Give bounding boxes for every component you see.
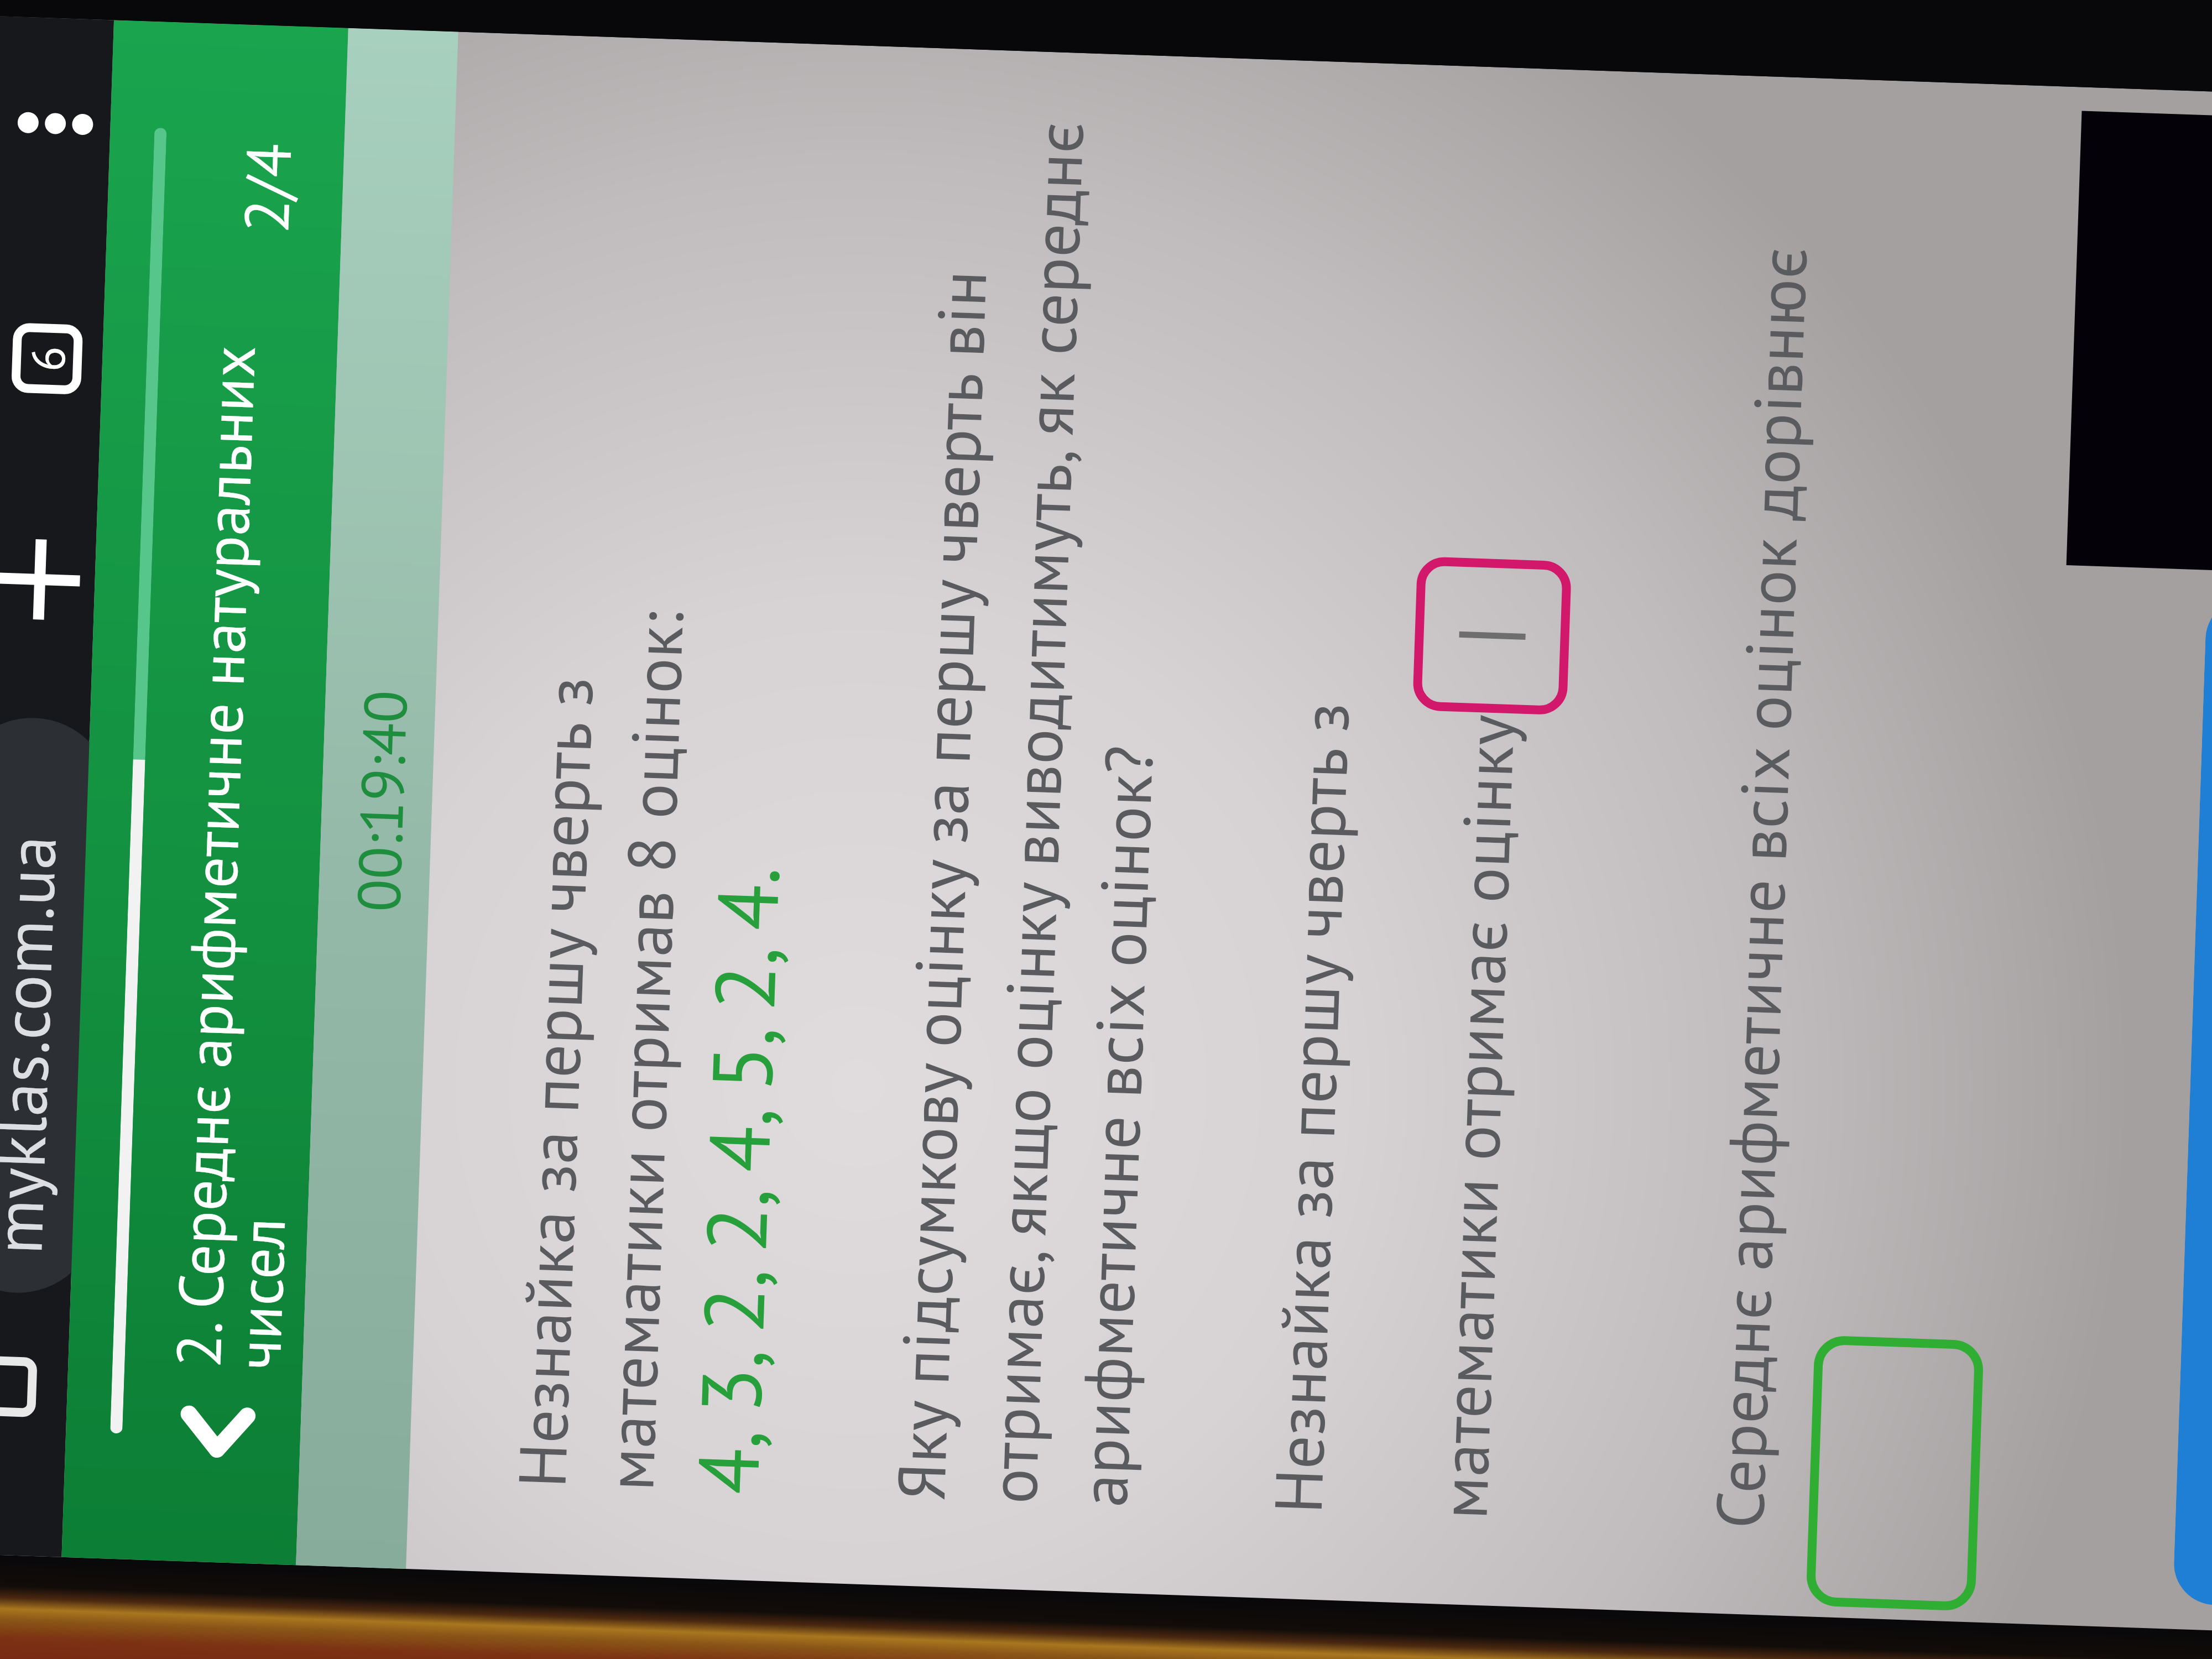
button[interactable]: More options: [0, 67, 112, 181]
button[interactable]: Check answer: [2173, 597, 2212, 1613]
button[interactable]: Home: [0, 1335, 58, 1438]
button[interactable]: Tabs: [0, 302, 104, 416]
staticText: 00:19:40: [339, 689, 424, 913]
staticText: математики отримав 8 оцінок:: [586, 610, 701, 1492]
button[interactable]: Illustration: [2066, 111, 2212, 578]
staticText: Незнайка за першу чверть з: [498, 675, 611, 1489]
staticText: арифметичне всіх оцінок?: [1059, 744, 1171, 1508]
staticText: Незнайка за першу чверть з: [1254, 701, 1367, 1515]
staticText: Середнє арифметичне всіх оцінок дорівнює: [1695, 245, 1825, 1530]
staticText: 2/4: [225, 142, 308, 234]
button[interactable]: Answer input 2: [1806, 1335, 1984, 1611]
staticText: Яку підсумкову оцінку за першу чверть ві…: [877, 269, 1005, 1502]
staticText: математики отримає оцінку: [1419, 713, 1532, 1520]
staticText: 4, 3, 2, 2, 4, 5, 2, 4.: [672, 864, 802, 1496]
staticText: 6: [17, 345, 78, 372]
staticText: отримає, якщо оцінку виводитимуть, як се…: [969, 120, 1101, 1505]
button[interactable]: New tab: [0, 523, 97, 637]
button[interactable]: myklas.com.ua: [0, 715, 115, 1295]
staticText: myklas.com.ua: [0, 834, 75, 1255]
button[interactable]: Answer input: [1412, 556, 1572, 715]
button[interactable]: Back: [149, 1362, 286, 1499]
staticText: 2. Середнє арифметичне натуральних чисел: [157, 330, 332, 1371]
